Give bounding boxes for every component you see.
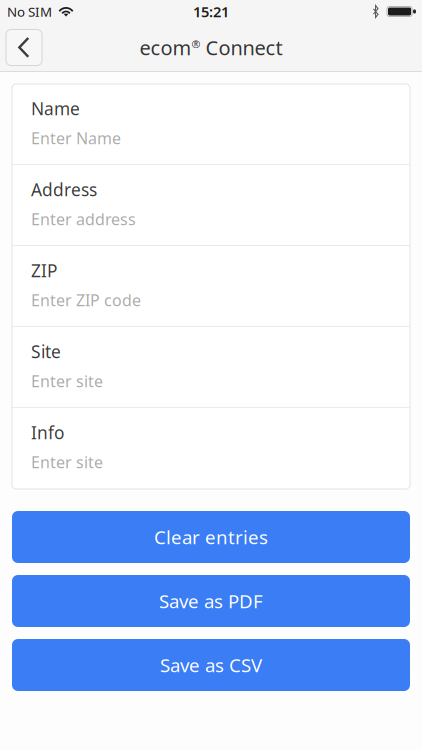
staticText: Clear entries: [154, 525, 268, 549]
button[interactable]: Clear entries: [12, 511, 410, 563]
staticText: ecom® Connect: [139, 34, 282, 61]
button[interactable]: Info: [12, 408, 410, 489]
button[interactable]: Save as CSV: [12, 639, 410, 691]
staticText: Address: [31, 178, 97, 201]
staticText: ZIP: [31, 259, 57, 282]
staticText: Save as CSV: [160, 653, 262, 677]
staticText: 15:21: [193, 2, 229, 21]
button[interactable]: Back: [6, 29, 42, 65]
button[interactable]: Address: [12, 165, 410, 246]
staticText: Name: [31, 97, 80, 120]
button[interactable]: ZIP: [12, 246, 410, 327]
staticText: Save as PDF: [159, 589, 263, 613]
staticText: Enter Name: [31, 127, 121, 149]
staticText: Enter ZIP code: [31, 289, 141, 311]
staticText: Enter site: [31, 451, 103, 473]
staticText: No SIM: [7, 3, 52, 20]
button[interactable]: Site: [12, 327, 410, 408]
staticText: Site: [31, 340, 61, 363]
staticText: Info: [31, 421, 64, 444]
staticText: Enter address: [31, 208, 136, 230]
staticText: Enter site: [31, 370, 103, 392]
button[interactable]: Name: [12, 84, 410, 165]
button[interactable]: Save as PDF: [12, 575, 410, 627]
